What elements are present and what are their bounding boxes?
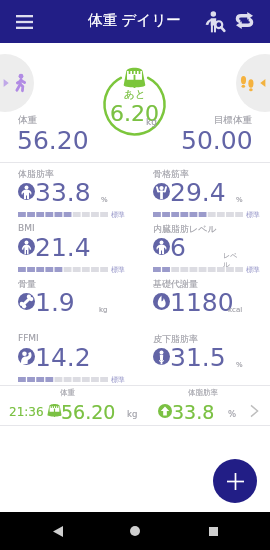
button[interactable]: Previous day (0, 54, 34, 112)
staticText: 体重 デイリー (88, 11, 181, 29)
staticText: 体重 (60, 388, 75, 397)
staticText: FFMI (18, 333, 39, 343)
staticText: 50.00 (181, 126, 253, 155)
staticText: kcal (228, 306, 243, 314)
staticText: 体重 (18, 114, 37, 126)
staticText: 骨量 (18, 278, 36, 289)
staticText: % (228, 409, 237, 419)
staticText: 33.8 (172, 401, 215, 423)
staticText: 21.4 (35, 233, 91, 262)
staticText: 29.4 (170, 178, 226, 207)
staticText: レベル (223, 251, 243, 269)
button[interactable]: FFMI (0, 328, 135, 383)
staticText: 目標体重 (214, 114, 252, 126)
staticText: 皮下脂肪率 (153, 333, 198, 344)
staticText: 31.5 (170, 343, 226, 372)
button[interactable]: 骨格筋率 (135, 163, 270, 218)
staticText: 33.8 (35, 178, 91, 207)
staticText: 14.2 (35, 343, 91, 372)
button[interactable]: Next day (236, 54, 270, 112)
staticText: % (101, 196, 108, 204)
button[interactable]: Sync (228, 4, 261, 37)
staticText: 56.20 (17, 126, 89, 155)
button[interactable]: 基礎代謝量 (135, 273, 270, 328)
staticText: 21:36 (9, 405, 44, 419)
button[interactable]: Recent apps (193, 512, 233, 550)
staticText: 標準 (111, 265, 125, 274)
staticText: 標準 (111, 210, 125, 219)
staticText: 標準 (246, 265, 260, 274)
staticText: 1180 (170, 288, 234, 317)
staticText: 基礎代謝量 (153, 278, 198, 289)
button[interactable]: Menu (8, 5, 41, 38)
button[interactable]: Back (38, 512, 78, 550)
button[interactable]: 体脂肪率 (0, 163, 135, 218)
staticText: 56.20 (61, 401, 116, 423)
staticText: % (236, 361, 243, 369)
button[interactable]: Home (115, 512, 155, 550)
button[interactable]: Add record (213, 459, 257, 503)
staticText: kg (99, 306, 108, 314)
staticText: 標準 (111, 375, 125, 384)
staticText: あと (124, 88, 146, 101)
button[interactable]: 皮下脂肪率 (135, 328, 270, 383)
staticText: % (236, 196, 243, 204)
button[interactable]: 骨量 (0, 273, 135, 328)
staticText: 6.20 (110, 101, 159, 127)
staticText: 骨格筋率 (153, 168, 189, 179)
button[interactable]: Search person (197, 5, 230, 38)
staticText: kg (127, 409, 138, 419)
staticText: kg (146, 117, 157, 127)
staticText: 内臓脂肪レベル (153, 223, 217, 234)
button[interactable]: 内臓脂肪レベル (135, 218, 270, 273)
staticText: 1.9 (35, 288, 75, 317)
button[interactable]: BMI (0, 218, 135, 273)
button[interactable]: 21:36 (0, 399, 270, 425)
staticText: 標準 (246, 210, 260, 219)
staticText: 6 (170, 233, 186, 262)
staticText: 体脂肪率 (188, 388, 218, 397)
staticText: BMI (18, 223, 35, 233)
staticText: 体脂肪率 (18, 168, 54, 179)
